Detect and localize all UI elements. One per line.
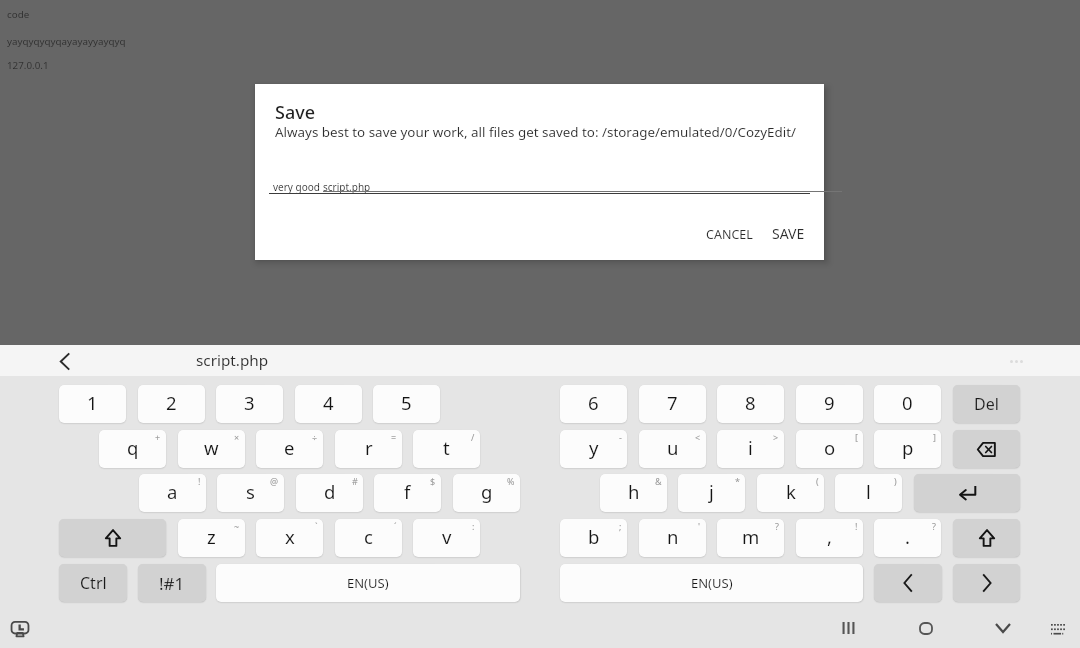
button[interactable]: !#1 (138, 564, 206, 602)
button[interactable]: b (560, 519, 627, 557)
staticText: script.php (196, 350, 269, 371)
staticText: i (748, 435, 753, 460)
button[interactable]: 3 (216, 385, 283, 423)
button[interactable]: 8 (717, 385, 784, 423)
button[interactable]: h (600, 474, 667, 512)
staticText: v (442, 524, 452, 549)
staticText: r (365, 435, 373, 460)
button[interactable]: Del (953, 385, 1020, 423)
button[interactable]: i (717, 430, 784, 468)
button[interactable]: w (178, 430, 245, 468)
button[interactable] (953, 564, 1020, 602)
button[interactable]: z (178, 519, 245, 557)
staticText: h (628, 479, 640, 504)
staticText: : (472, 520, 475, 532)
staticText: ? (932, 520, 936, 532)
button[interactable]: Back (52, 349, 76, 373)
button[interactable]: CANCEL (697, 218, 762, 251)
staticText: ) (894, 475, 897, 487)
button[interactable]: Change keyboard (1046, 616, 1070, 640)
button[interactable]: 0 (874, 385, 941, 423)
staticText: * (735, 475, 740, 487)
button[interactable]: y (560, 430, 627, 468)
button[interactable]: Ctrl (59, 564, 127, 602)
button[interactable]: c (335, 519, 402, 557)
button[interactable]: k (757, 474, 824, 512)
staticText: Del (974, 393, 999, 415)
button[interactable]: EN(US) (560, 564, 863, 602)
button[interactable]: p (874, 430, 941, 468)
staticText: ? (775, 520, 779, 532)
button[interactable]: a (139, 474, 206, 512)
staticText: % (507, 475, 515, 487)
button[interactable]: v (413, 519, 480, 557)
staticText: p (902, 435, 914, 460)
staticText: × (234, 431, 240, 443)
staticText: c (364, 524, 373, 549)
staticText: 2 (166, 390, 177, 415)
button[interactable]: r (335, 430, 402, 468)
staticText: 0 (902, 390, 913, 415)
button[interactable]: u (639, 430, 706, 468)
staticText: 5 (401, 390, 412, 415)
button[interactable] (953, 519, 1020, 557)
button[interactable]: f (374, 474, 441, 512)
button[interactable]: 7 (639, 385, 706, 423)
button[interactable]: Recent apps (836, 616, 860, 640)
button[interactable]: x (256, 519, 323, 557)
staticText: 7 (667, 390, 678, 415)
staticText: y (589, 435, 599, 460)
staticText: $ (430, 475, 436, 487)
staticText: g (481, 479, 493, 504)
staticText: CANCEL (706, 226, 753, 243)
button[interactable]: 1 (59, 385, 126, 423)
staticText: m (742, 524, 760, 549)
button[interactable] (59, 519, 166, 557)
staticText: 9 (824, 390, 835, 415)
staticText: + (155, 431, 161, 443)
button[interactable]: o (796, 430, 863, 468)
button[interactable]: q (99, 430, 166, 468)
staticText: 6 (588, 390, 599, 415)
button[interactable]: s (217, 474, 284, 512)
staticText: 127.0.0.1 (7, 59, 49, 72)
button[interactable]: n (639, 519, 706, 557)
staticText: & (655, 475, 662, 487)
button[interactable]: 2 (138, 385, 205, 423)
button[interactable]: SAVE (763, 216, 814, 251)
button[interactable]: Clipboard (8, 617, 32, 641)
button[interactable]: EN(US) (216, 564, 520, 602)
button[interactable]: e (256, 430, 323, 468)
button[interactable] (953, 430, 1020, 468)
button[interactable]: 4 (295, 385, 362, 423)
button[interactable]: . (874, 519, 941, 557)
button[interactable]: 9 (796, 385, 863, 423)
button[interactable]: 6 (560, 385, 627, 423)
button[interactable]: Home (914, 616, 938, 640)
staticText: t (443, 435, 450, 460)
staticText: b (588, 524, 600, 549)
button[interactable]: d (296, 474, 363, 512)
staticText: o (824, 435, 836, 460)
button[interactable]: j (678, 474, 745, 512)
staticText: 8 (745, 390, 756, 415)
button[interactable]: Hide keyboard (991, 616, 1015, 640)
staticText: a (167, 479, 178, 504)
button[interactable] (914, 474, 1020, 512)
button[interactable]: More options (1004, 349, 1028, 373)
button[interactable]: Code editor (0, 0, 1080, 345)
button[interactable]: t (413, 430, 480, 468)
staticText: ! (198, 475, 201, 487)
button[interactable]: , (796, 519, 863, 557)
staticText: j (709, 479, 714, 504)
button[interactable]: 5 (373, 385, 440, 423)
staticText: z (207, 524, 216, 549)
button[interactable]: g (453, 474, 520, 512)
button[interactable] (874, 564, 942, 602)
staticText: f (404, 479, 411, 504)
button[interactable]: l (835, 474, 902, 512)
staticText: q (127, 435, 139, 460)
staticText: > (773, 431, 779, 443)
staticText: ( (816, 475, 819, 487)
button[interactable]: m (717, 519, 784, 557)
